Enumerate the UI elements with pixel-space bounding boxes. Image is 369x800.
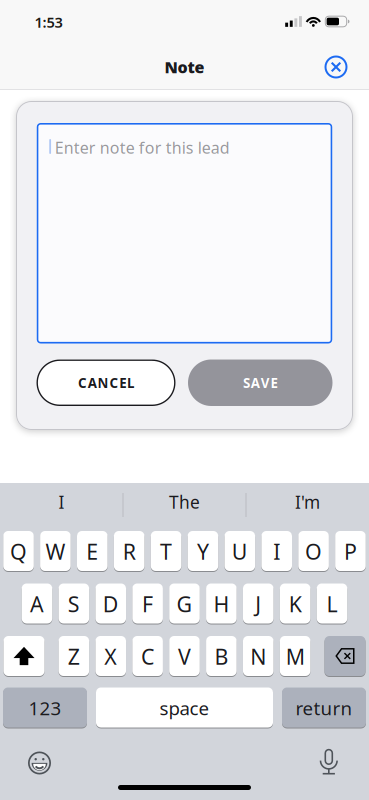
button[interactable]: O — [298, 530, 329, 571]
staticText: O — [305, 537, 322, 566]
button[interactable]: The — [123, 483, 246, 521]
staticText: V — [178, 642, 191, 671]
staticText: J — [255, 590, 261, 618]
button[interactable]: Dictate — [319, 750, 339, 776]
staticText: U — [232, 537, 248, 566]
button[interactable]: H — [206, 583, 237, 624]
button[interactable]: Delete — [324, 635, 365, 676]
button[interactable]: 123 — [3, 687, 87, 728]
button[interactable]: X — [95, 635, 126, 676]
button[interactable]: W — [40, 530, 71, 571]
staticText: I — [273, 537, 280, 566]
staticText: R — [123, 537, 136, 566]
button[interactable]: B — [206, 635, 237, 676]
staticText: T — [160, 537, 172, 566]
staticText: H — [213, 590, 229, 618]
staticText: Z — [68, 642, 80, 671]
staticText: C — [141, 642, 154, 671]
staticText: Enter note for this lead — [55, 137, 230, 158]
staticText: Y — [197, 537, 209, 566]
staticText: S — [68, 590, 80, 618]
button[interactable]: Emoji — [28, 751, 51, 774]
staticText: return — [295, 696, 352, 720]
staticText: E — [86, 537, 98, 566]
button[interactable]: G — [169, 583, 200, 624]
staticText: D — [103, 590, 119, 618]
staticText: A — [30, 590, 44, 618]
button[interactable]: P — [335, 530, 366, 571]
staticText: K — [289, 590, 302, 618]
button[interactable]: I'm — [246, 483, 369, 521]
button[interactable]: K — [280, 583, 310, 624]
button[interactable]: F — [132, 583, 163, 624]
staticText: I'm — [295, 490, 320, 513]
staticText: G — [176, 590, 192, 618]
button[interactable]: C — [132, 635, 163, 676]
staticText: N — [250, 642, 266, 671]
button[interactable]: M — [280, 635, 310, 676]
staticText: CANCEL — [78, 374, 134, 392]
button[interactable]: N — [243, 635, 274, 676]
staticText: W — [45, 537, 65, 566]
staticText: F — [142, 590, 153, 618]
staticText: The — [169, 490, 200, 513]
button[interactable]: U — [224, 530, 255, 571]
staticText: SAVE — [243, 374, 277, 392]
staticText: 1:53 — [34, 12, 62, 32]
button[interactable]: I — [261, 530, 292, 571]
button[interactable]: T — [151, 530, 181, 571]
button[interactable]: Close — [324, 55, 347, 78]
button[interactable]: Z — [59, 635, 89, 676]
button[interactable]: L — [317, 583, 347, 624]
staticText: X — [104, 642, 117, 671]
staticText: P — [344, 537, 357, 566]
staticText: B — [214, 642, 228, 671]
button[interactable]: Shift — [3, 635, 44, 676]
button[interactable]: J — [243, 583, 274, 624]
staticText: I — [58, 490, 64, 513]
button[interactable]: A — [22, 583, 52, 624]
button[interactable]: Q — [3, 530, 34, 571]
button[interactable]: D — [95, 583, 126, 624]
button[interactable]: space — [96, 687, 273, 728]
button[interactable]: Y — [188, 530, 218, 571]
button[interactable]: return — [282, 687, 366, 728]
button[interactable]: R — [114, 530, 144, 571]
staticText: Q — [10, 537, 27, 566]
staticText: M — [286, 642, 305, 671]
staticText: Note — [164, 56, 204, 78]
staticText: 123 — [28, 696, 61, 720]
button[interactable]: SAVE — [188, 359, 332, 406]
button[interactable]: I — [0, 483, 123, 521]
button[interactable]: E — [77, 530, 108, 571]
button[interactable]: V — [169, 635, 200, 676]
staticText: L — [326, 590, 337, 618]
staticText: space — [159, 696, 209, 720]
button[interactable]: CANCEL — [36, 359, 175, 406]
button[interactable]: S — [59, 583, 89, 624]
